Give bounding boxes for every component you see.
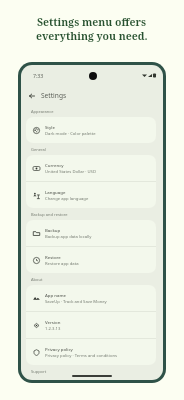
button[interactable]: App name — [26, 285, 156, 311]
staticText: Version — [45, 319, 61, 325]
staticText: Backup — [45, 227, 61, 233]
button[interactable]: Privacy policy — [26, 339, 156, 365]
staticText: Currency — [45, 162, 64, 168]
staticText: SaveUp · Track and Save Money — [45, 299, 107, 305]
staticText: Settings — [41, 91, 67, 100]
button[interactable]: Currency — [26, 155, 156, 181]
staticText: Appearance — [31, 109, 54, 114]
button[interactable]: Backup — [26, 220, 156, 246]
button[interactable]: Restore — [26, 247, 156, 273]
staticText: 7:33 — [33, 72, 44, 79]
staticText: Privacy policy · Terms and conditions — [45, 353, 118, 359]
button[interactable]: Version — [26, 312, 156, 338]
staticText: 1.2.3.13 — [45, 326, 61, 332]
button[interactable]: Back — [25, 89, 38, 102]
staticText: Style — [45, 124, 55, 130]
staticText: About — [31, 277, 43, 282]
staticText: Privacy policy — [45, 346, 73, 352]
staticText: Settings menu offers — [37, 15, 147, 29]
staticText: Backup app data locally — [45, 234, 92, 240]
button[interactable]: Style — [26, 117, 156, 143]
staticText: everything you need. — [36, 29, 148, 43]
staticText: Change app language — [45, 196, 89, 202]
staticText: General — [31, 147, 46, 152]
staticText: App name — [45, 292, 66, 298]
staticText: Restore app data — [45, 261, 79, 267]
staticText: Support — [31, 369, 47, 374]
staticText: Dark mode · Color palette — [45, 131, 96, 137]
button[interactable]: Language — [26, 182, 156, 208]
staticText: Backup and restore — [31, 212, 68, 217]
staticText: United States Dollar · USD — [45, 169, 96, 175]
staticText: Restore — [45, 254, 61, 260]
staticText: Language — [45, 189, 66, 195]
